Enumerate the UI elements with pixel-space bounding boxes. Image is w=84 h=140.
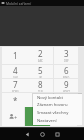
staticText: 5 [38,65,43,76]
button[interactable]: 4 [2,65,28,78]
button[interactable]: 3 [54,47,78,64]
button[interactable]: Home [35,128,50,140]
staticText: MNO [63,76,70,78]
button[interactable]: Recents [50,128,65,140]
button[interactable]: 8 [28,79,53,92]
staticText: PQRS [12,90,19,92]
staticText: 4 [13,65,18,76]
button[interactable]: Smazat všechny záznamy [33,109,82,117]
button[interactable]: Back [20,128,35,140]
staticText: 6 [64,65,69,76]
button[interactable]: 5 [28,65,53,78]
staticText: 9 [64,79,69,90]
button[interactable]: 6 [54,65,78,78]
staticText: GHI [13,76,18,78]
button[interactable]: 2 [28,47,53,64]
button[interactable]: 0 [28,93,53,107]
staticText: TUV [38,90,43,92]
staticText: WXYZ [63,90,70,92]
button[interactable]: 9 [54,79,78,92]
staticText: 3 [64,48,69,59]
button[interactable]: Nastavení [33,117,82,125]
button[interactable]: Backspace [51,107,77,126]
staticText: 1 [13,50,18,61]
staticText: DEF [64,59,69,63]
staticText: Záznam hovoru [37,102,68,108]
staticText: 0 [38,93,43,104]
button[interactable]: Call [25,107,50,126]
staticText: JKL [39,76,43,78]
button[interactable]: # [54,93,78,107]
staticText: * [13,95,18,106]
staticText: 8 [38,79,43,90]
button[interactable]: 1 [2,47,28,64]
staticText: ABC [38,59,43,63]
staticText: Nastavení [37,118,57,124]
button[interactable]: Nový kontakt [33,94,82,101]
staticText: # [63,95,69,106]
staticText: Smazat všechny záznamy [37,110,82,116]
button[interactable]: Add contact [2,107,24,126]
button[interactable]: Záznam hovoru [33,101,82,109]
staticText: 7 [13,79,18,90]
staticText: + [40,104,42,107]
button[interactable]: 7 [2,79,28,92]
staticText: 2 [38,48,43,59]
staticText: Nový kontakt [37,95,63,101]
staticText: Mobilní zařízení [6,1,32,6]
button[interactable]: * [2,93,28,107]
